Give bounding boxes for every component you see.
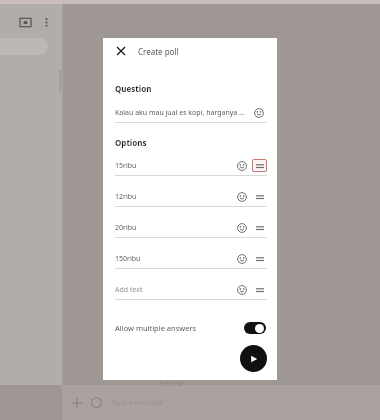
button[interactable]: Reorder option xyxy=(252,190,267,203)
staticText: Type a message xyxy=(111,398,164,408)
button[interactable]: 20ribu xyxy=(103,220,277,238)
button[interactable]: 150ribu xyxy=(103,251,277,269)
button[interactable]: Emoji xyxy=(235,190,248,203)
button[interactable]: Emoji xyxy=(235,159,248,172)
staticText: Add text xyxy=(115,285,231,295)
staticText: Allow multiple answers xyxy=(115,323,197,333)
button[interactable]: Close xyxy=(113,43,129,59)
button[interactable]: Reorder option xyxy=(252,283,267,296)
button[interactable]: 15ribu xyxy=(103,158,277,176)
button[interactable]: Reorder option xyxy=(252,159,267,172)
staticText: Options xyxy=(115,137,147,148)
button[interactable]: Kalau aku mau jual es kopi, harganya ber… xyxy=(103,105,277,123)
button[interactable]: Emoji xyxy=(235,252,248,265)
staticText: 150ribu xyxy=(115,254,231,264)
button[interactable]: 12ribu xyxy=(103,189,277,207)
button[interactable]: Reorder option xyxy=(252,252,267,265)
button[interactable]: Reorder option xyxy=(252,221,267,234)
staticText: 20ribu xyxy=(115,223,231,233)
button[interactable]: Emoji xyxy=(235,283,248,296)
button[interactable]: Emoji xyxy=(235,221,248,234)
button[interactable]: Emoji xyxy=(252,106,265,119)
button[interactable]: Send poll xyxy=(240,345,267,372)
staticText: Create poll xyxy=(138,46,179,57)
button[interactable]: Add text xyxy=(103,282,277,300)
button[interactable]: Allow multiple answers xyxy=(103,317,277,339)
staticText: 12ribu xyxy=(115,192,231,202)
staticText: 15ribu xyxy=(115,161,231,171)
staticText: Kalau aku mau jual es kopi, harganya ber… xyxy=(115,108,248,118)
staticText: Question xyxy=(115,83,152,94)
staticText: 5:35 PM xyxy=(160,380,183,388)
